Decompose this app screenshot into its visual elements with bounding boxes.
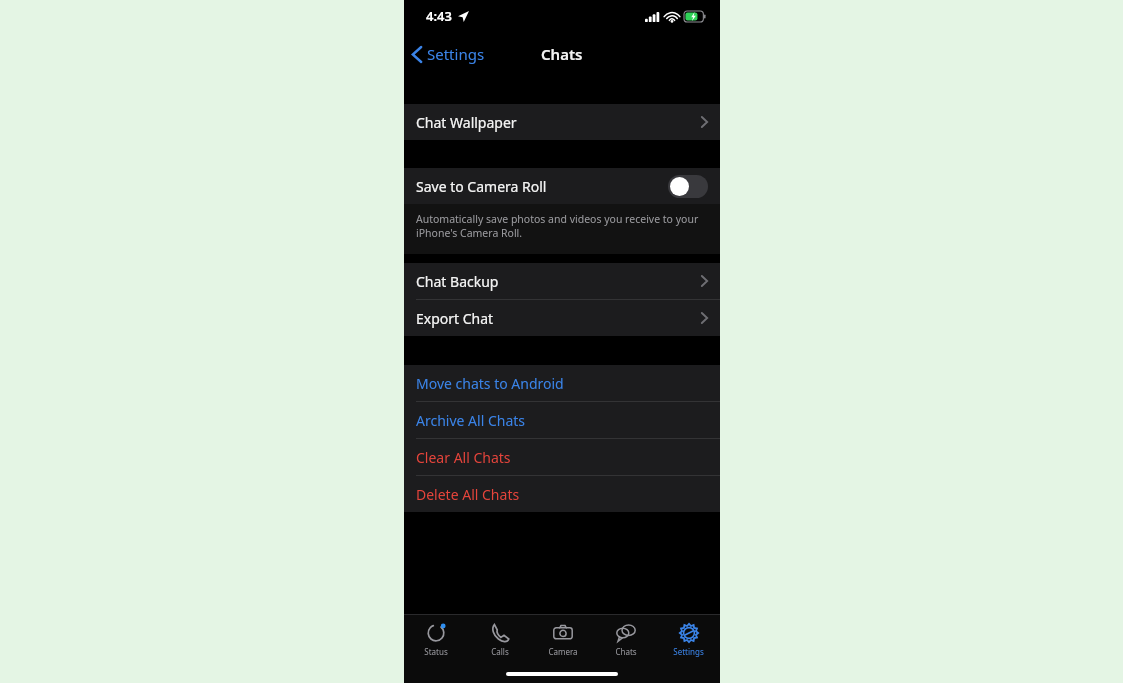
button[interactable]: Delete All Chats (404, 476, 720, 512)
button[interactable]: Status (404, 615, 468, 665)
staticText: 4:43 (426, 7, 452, 25)
staticText: Status (424, 646, 448, 657)
staticText: Move chats to Android (416, 374, 564, 393)
button[interactable]: Chat Backup (404, 263, 720, 299)
button[interactable]: Save to Camera Roll (404, 168, 720, 204)
staticText: Clear All Chats (416, 448, 511, 467)
button[interactable]: Export Chat (404, 300, 720, 336)
staticText: Chat Backup (416, 272, 701, 291)
staticText: Automatically save photos and videos you… (416, 212, 702, 240)
staticText: Chat Wallpaper (416, 113, 701, 132)
button[interactable]: Camera (531, 615, 594, 665)
staticText: Save to Camera Roll (416, 177, 668, 196)
staticText: Export Chat (416, 309, 701, 328)
staticText: Settings (673, 646, 704, 657)
button[interactable]: Chat Wallpaper (404, 104, 720, 140)
button[interactable]: Move chats to Android (404, 365, 720, 401)
staticText: Calls (491, 646, 509, 657)
button[interactable]: Clear All Chats (404, 439, 720, 475)
button[interactable]: Archive All Chats (404, 402, 720, 438)
staticText: Chats (541, 44, 583, 64)
staticText: Camera (548, 646, 578, 657)
button[interactable]: Chats (594, 615, 657, 665)
button[interactable]: Calls (468, 615, 531, 665)
staticText: Chats (615, 646, 637, 657)
staticText: Archive All Chats (416, 411, 526, 430)
staticText: Settings (427, 44, 485, 64)
staticText: Delete All Chats (416, 485, 520, 504)
button[interactable]: Settings (404, 40, 493, 68)
button[interactable]: Settings (657, 615, 720, 665)
